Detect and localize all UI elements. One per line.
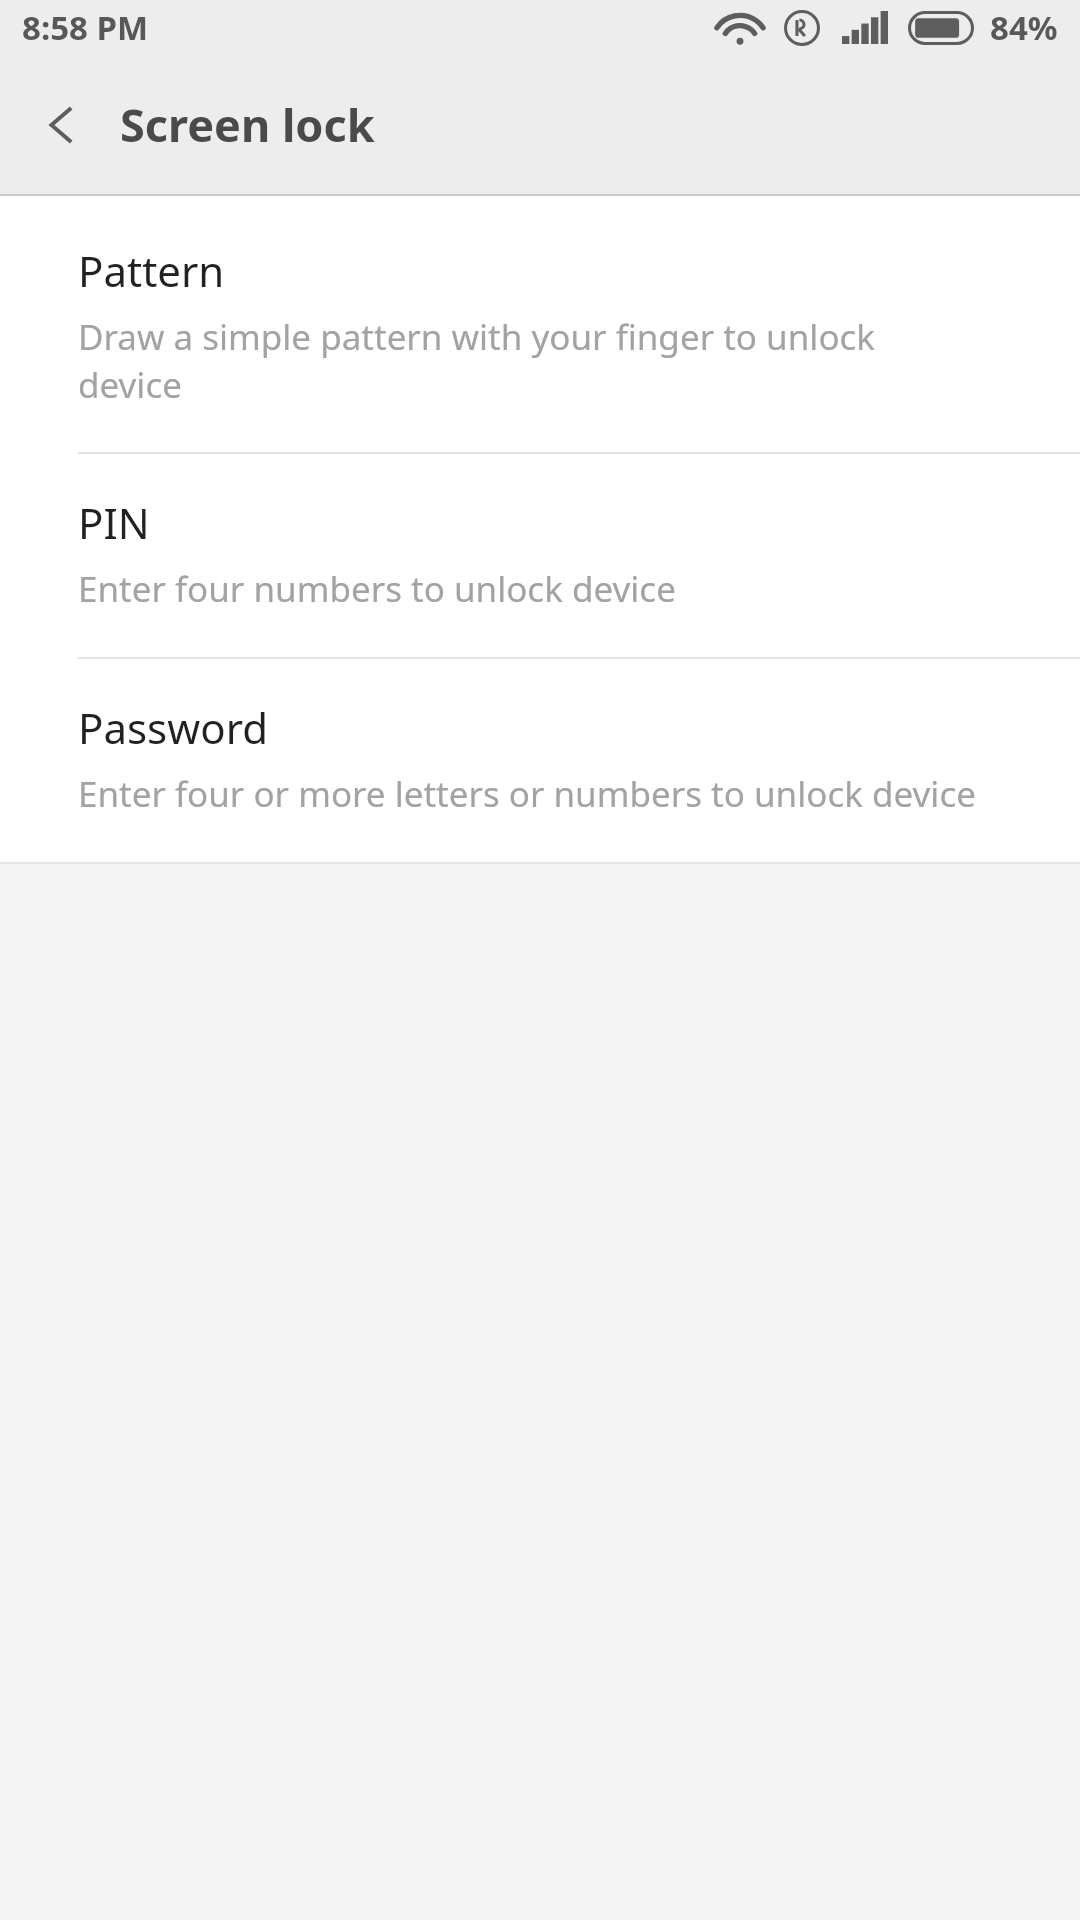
staticText: Password <box>78 699 268 756</box>
staticText: 84% <box>990 5 1058 50</box>
staticText: Draw a simple pattern with your finger t… <box>78 313 988 408</box>
button[interactable]: PIN <box>0 454 1080 657</box>
button[interactable]: Pattern <box>0 196 1080 452</box>
staticText: Screen lock <box>120 94 375 155</box>
button[interactable]: Back <box>18 81 106 169</box>
staticText: PIN <box>78 494 150 551</box>
button[interactable]: Password <box>0 659 1080 862</box>
staticText: 8:58 PM <box>22 5 149 50</box>
staticText: Enter four or more letters or numbers to… <box>78 770 976 818</box>
staticText: Enter four numbers to unlock device <box>78 565 676 613</box>
staticText: Pattern <box>78 242 225 299</box>
